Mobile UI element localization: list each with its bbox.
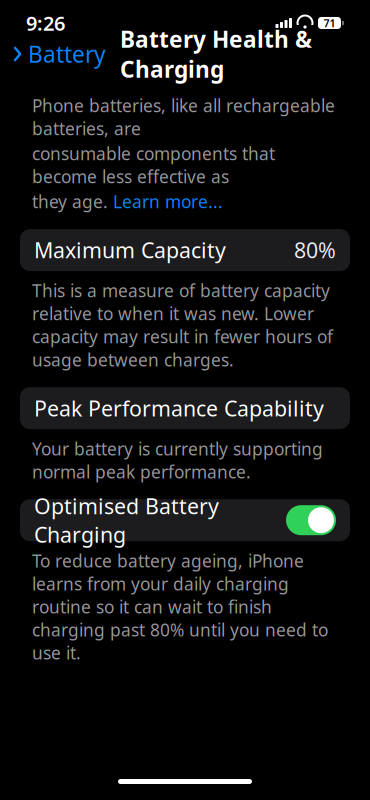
staticText: Maximum Capacity bbox=[34, 236, 226, 264]
staticText: 71 bbox=[323, 16, 335, 30]
staticText: To reduce battery ageing, iPhone learns … bbox=[32, 549, 328, 664]
staticText: 9:26 bbox=[26, 10, 65, 36]
button[interactable]: Learn more... bbox=[113, 190, 223, 213]
button[interactable]: Optimised Battery Charging bbox=[20, 499, 350, 541]
staticText: Battery Health & Charging bbox=[120, 24, 312, 84]
staticText: Peak Performance Capability bbox=[34, 394, 324, 422]
staticText: Your battery is currently supporting nor… bbox=[32, 437, 323, 483]
staticText: This is a measure of battery capacity re… bbox=[32, 279, 333, 371]
button[interactable]: Peak Performance Capability bbox=[20, 387, 350, 429]
staticText: they age. bbox=[32, 190, 113, 213]
button[interactable]: Maximum Capacity bbox=[20, 229, 350, 271]
staticText: consumable components that become less e… bbox=[32, 142, 275, 188]
button[interactable]: Battery bbox=[0, 33, 106, 75]
staticText: Phone batteries, like all rechargeable b… bbox=[32, 94, 335, 140]
staticText: Battery bbox=[28, 39, 106, 69]
staticText: Learn more... bbox=[113, 190, 223, 213]
staticText: 80% bbox=[294, 236, 336, 264]
staticText: Optimised Battery Charging bbox=[34, 492, 219, 549]
